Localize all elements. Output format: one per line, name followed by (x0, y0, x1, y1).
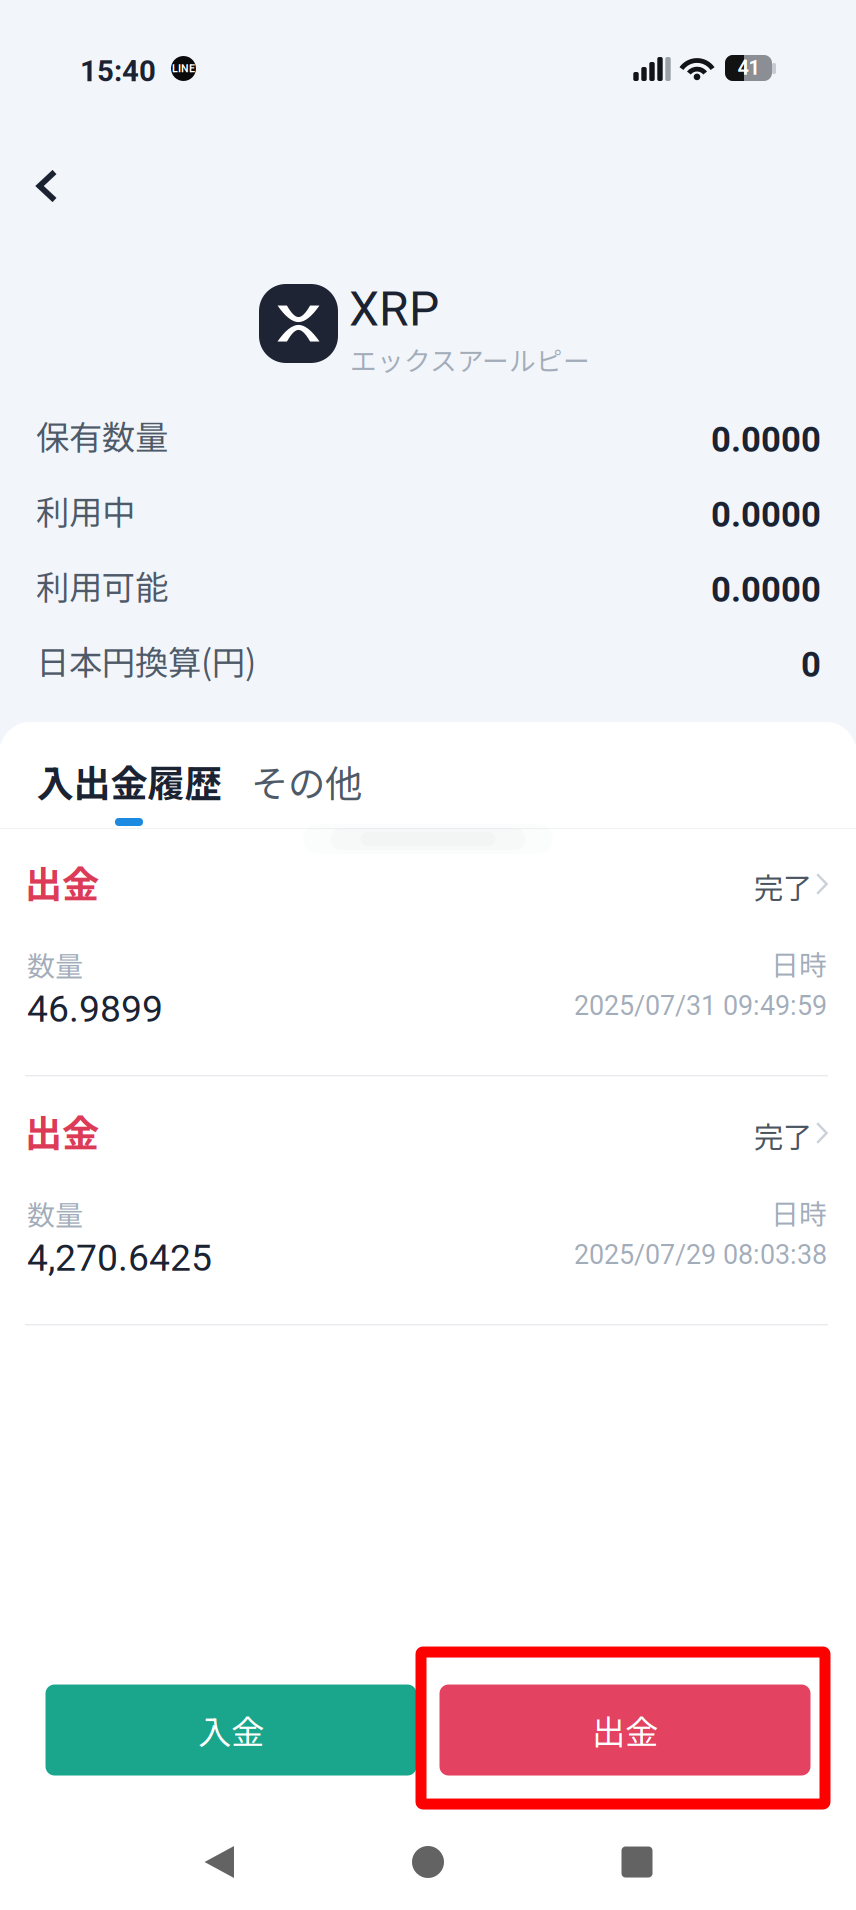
staticText: 日時 (771, 943, 827, 983)
staticText: 入金 (198, 1706, 264, 1754)
staticText: 2025/07/29 08:03:38 (574, 1239, 827, 1271)
staticText: 利用中 (36, 486, 135, 534)
staticText: 15:40 (80, 54, 156, 88)
button[interactable]: Home (376, 1814, 480, 1910)
staticText: 保有数量 (36, 411, 168, 459)
staticText: 数量 (27, 944, 83, 984)
button[interactable]: 入金 (45, 1684, 416, 1775)
staticText: 日時 (771, 1192, 827, 1232)
button[interactable]: 出金 (0, 866, 856, 1115)
button[interactable]: その他 (251, 758, 362, 804)
button[interactable]: 出金 (439, 1684, 810, 1775)
button[interactable]: 入出金履歴 (36, 758, 222, 838)
staticText: 日本円換算(円) (36, 636, 256, 684)
staticText: 入出金履歴 (36, 754, 221, 808)
staticText: 出金 (592, 1706, 658, 1754)
staticText: 完了 (754, 865, 812, 907)
staticText: 46.9899 (27, 987, 163, 1031)
staticText: 完了 (754, 1114, 812, 1156)
staticText: 数量 (27, 1193, 83, 1233)
staticText: XRP (349, 281, 439, 337)
staticText: 41 (737, 56, 759, 80)
staticText: 4,270.6425 (27, 1236, 212, 1280)
staticText: 利用可能 (36, 561, 168, 609)
button[interactable]: Back (167, 1814, 271, 1910)
staticText: 出金 (25, 1104, 99, 1158)
staticText: LINE (172, 62, 195, 75)
button[interactable]: Recent apps (585, 1814, 689, 1910)
staticText: 0.0000 (711, 570, 821, 610)
staticText: エックスアールピー (350, 340, 590, 379)
button[interactable]: 出金 (0, 1115, 856, 1364)
button[interactable]: Back (1, 140, 93, 232)
staticText: 2025/07/31 09:49:59 (574, 990, 827, 1022)
staticText: その他 (251, 754, 362, 808)
staticText: 0 (801, 645, 821, 685)
staticText: 出金 (25, 855, 99, 909)
staticText: 0.0000 (711, 495, 821, 535)
staticText: 0.0000 (711, 420, 821, 460)
